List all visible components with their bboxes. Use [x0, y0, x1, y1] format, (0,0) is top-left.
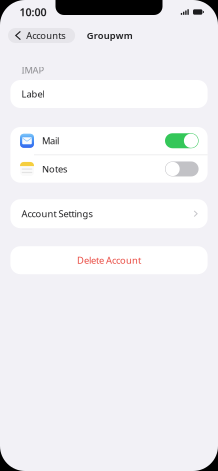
staticText: Groupwm: [87, 29, 133, 42]
button[interactable]: Notes: [10, 155, 208, 183]
staticText: Mail: [42, 135, 59, 147]
button[interactable]: Accounts: [8, 28, 75, 43]
staticText: Label: [21, 88, 44, 100]
button[interactable]: Delete Account: [10, 246, 208, 274]
staticText: 10:00: [19, 5, 46, 19]
button[interactable]: Account Settings: [10, 199, 208, 228]
staticText: Notes: [42, 163, 67, 175]
staticText: Delete Account: [77, 254, 141, 266]
staticText: Account Settings: [21, 207, 92, 220]
staticText: Accounts: [26, 29, 65, 42]
staticText: IMAP: [21, 64, 44, 76]
button[interactable]: Mail: [10, 127, 208, 154]
